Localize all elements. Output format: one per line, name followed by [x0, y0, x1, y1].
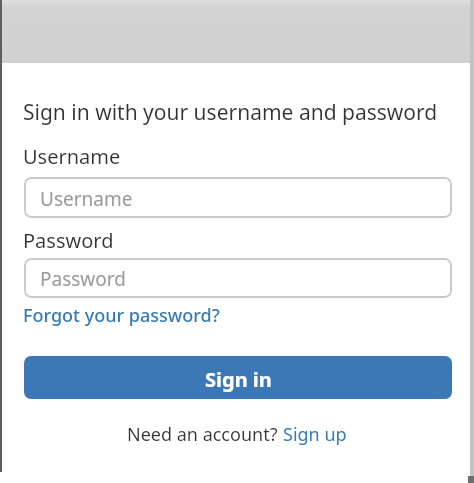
button[interactable]: Password: [24, 258, 452, 298]
staticText: Username: [23, 143, 121, 170]
button[interactable]: Username: [24, 177, 452, 218]
staticText: Need an account?: [127, 422, 283, 447]
staticText: Forgot your password?: [23, 303, 220, 328]
staticText: Sign in with your username and password: [23, 98, 438, 127]
button[interactable]: Forgot your password?: [23, 303, 220, 328]
staticText: Username: [40, 186, 133, 212]
staticText: Password: [40, 266, 126, 292]
staticText: Password: [23, 227, 114, 254]
button[interactable]: Sign up: [283, 422, 347, 447]
staticText: Sign in: [205, 366, 272, 393]
staticText: Sign up: [283, 422, 347, 447]
button[interactable]: Sign in: [24, 356, 452, 399]
